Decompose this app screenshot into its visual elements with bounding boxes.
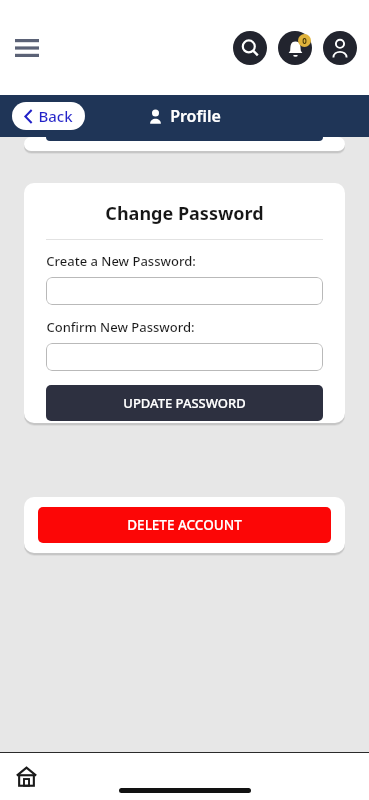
button[interactable]: Search	[233, 31, 267, 65]
button[interactable]: Menu	[8, 29, 46, 67]
button[interactable]: Home	[6, 756, 46, 796]
button[interactable]: Account	[323, 31, 357, 65]
button[interactable]: DELETE ACCOUNT	[38, 507, 331, 543]
button[interactable]	[46, 277, 323, 305]
button[interactable]: Notifications	[278, 31, 312, 65]
button[interactable]: Back	[12, 102, 85, 130]
staticText: DELETE ACCOUNT	[127, 516, 242, 534]
staticText: UPDATE PASSWORD	[123, 394, 246, 412]
button[interactable]	[46, 343, 323, 371]
staticText: Confirm New Password:	[46, 318, 195, 336]
staticText: Back	[38, 106, 73, 126]
staticText: 0	[302, 35, 307, 46]
button[interactable]: UPDATE PASSWORD	[46, 385, 323, 421]
staticText: Create a New Password:	[46, 252, 196, 270]
staticText: Profile	[170, 105, 221, 127]
staticText: Change Password	[105, 201, 264, 226]
